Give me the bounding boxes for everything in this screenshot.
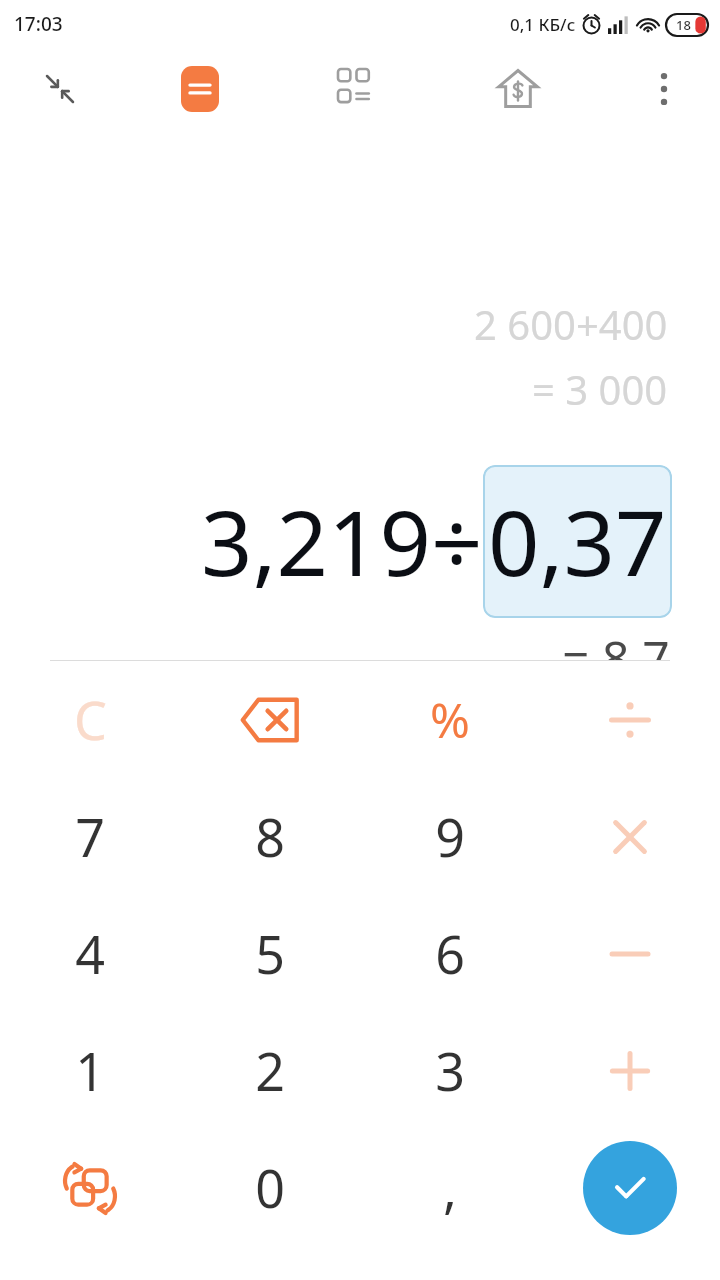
staticText: = 3 000	[532, 362, 668, 416]
button[interactable]: Confirm	[583, 1141, 677, 1235]
button[interactable]: 1	[0, 1012, 180, 1129]
button[interactable]: 8	[180, 778, 360, 895]
staticText: 0	[255, 1152, 285, 1223]
staticText: = 8,7	[562, 625, 670, 660]
staticText: 6	[435, 918, 465, 989]
button[interactable]: Mortgage	[484, 55, 552, 123]
staticText: 5	[255, 918, 285, 989]
button[interactable]: ,	[360, 1129, 540, 1246]
staticText: 0,1 КБ/с	[510, 13, 576, 36]
button[interactable]: 9	[360, 778, 540, 895]
staticText: 3	[435, 1035, 465, 1106]
button[interactable]: More options	[634, 59, 694, 119]
staticText: 1	[75, 1035, 105, 1106]
staticText: 3,219÷	[201, 480, 483, 603]
button[interactable]: Percent	[360, 661, 540, 778]
button[interactable]: Divide	[540, 661, 720, 778]
button[interactable]: 0,37	[488, 480, 667, 603]
button[interactable]: Convert units	[0, 1129, 180, 1246]
button[interactable]: Clear	[0, 661, 180, 778]
staticText: 8	[255, 801, 285, 872]
staticText: %	[430, 687, 470, 752]
button[interactable]: 4	[0, 895, 180, 1012]
staticText: 7	[75, 801, 105, 872]
button[interactable]: 5	[180, 895, 360, 1012]
button[interactable]: 7	[0, 778, 180, 895]
staticText: 9	[435, 801, 465, 872]
staticText: 2 600+400	[474, 297, 668, 351]
staticText: 17:03	[14, 11, 63, 37]
button[interactable]: Plus	[540, 1012, 720, 1129]
staticText: 0,37	[488, 480, 667, 603]
button[interactable]: 2	[180, 1012, 360, 1129]
button[interactable]: Equals mode	[168, 57, 232, 121]
button[interactable]: 6	[360, 895, 540, 1012]
staticText: 18	[676, 16, 691, 34]
staticText: 4	[75, 918, 105, 989]
button[interactable]: 0	[180, 1129, 360, 1246]
button[interactable]: Collapse	[26, 55, 94, 123]
button[interactable]: Layout	[326, 55, 394, 123]
staticText: ,	[443, 1152, 457, 1223]
button[interactable]: Minus	[540, 895, 720, 1012]
button[interactable]: Multiply	[540, 778, 720, 895]
button[interactable]: Backspace	[180, 661, 360, 778]
staticText: C	[74, 684, 107, 755]
staticText: 2	[255, 1035, 285, 1106]
button[interactable]: 3	[360, 1012, 540, 1129]
